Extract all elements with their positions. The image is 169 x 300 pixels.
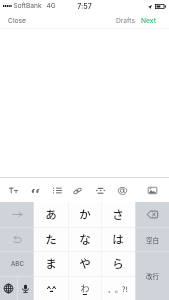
staticText: な bbox=[79, 231, 91, 248]
button[interactable]: ら bbox=[101, 251, 135, 276]
staticText: Next bbox=[141, 17, 156, 25]
button[interactable]: あ bbox=[34, 202, 68, 227]
staticText: SoftBank bbox=[13, 2, 42, 10]
staticText: ま bbox=[45, 255, 57, 272]
staticText: た bbox=[45, 231, 57, 248]
staticText: あ bbox=[45, 206, 57, 223]
button[interactable]: Mention bbox=[113, 180, 131, 201]
staticText: か bbox=[79, 206, 91, 223]
button[interactable]: Text format bbox=[4, 180, 22, 201]
button[interactable]: Drafts bbox=[112, 13, 138, 29]
button[interactable]: や bbox=[68, 251, 102, 276]
staticText: 改行 bbox=[146, 271, 159, 280]
button[interactable]: Delete bbox=[135, 202, 169, 227]
button[interactable]: た bbox=[34, 227, 68, 252]
button[interactable]: Quote bbox=[26, 180, 44, 201]
staticText: Drafts bbox=[116, 17, 135, 25]
button[interactable]: Bullet list bbox=[48, 180, 66, 201]
staticText: さ bbox=[112, 206, 124, 223]
staticText: ら bbox=[112, 255, 124, 272]
button[interactable]: Insert image bbox=[143, 180, 161, 201]
staticText: ABC bbox=[11, 260, 24, 268]
staticText: や bbox=[79, 255, 91, 272]
staticText: 4G bbox=[46, 2, 56, 10]
button[interactable]: さ bbox=[101, 202, 135, 227]
button[interactable]: わ bbox=[68, 276, 102, 300]
staticText: 7:57 bbox=[77, 2, 92, 10]
button[interactable]: Dictation bbox=[17, 276, 34, 300]
button[interactable]: Next bbox=[138, 13, 169, 29]
staticText: 、。?! bbox=[108, 284, 128, 294]
button[interactable]: ま bbox=[34, 251, 68, 276]
button[interactable]: な bbox=[68, 227, 102, 252]
button[interactable]: Insert link bbox=[68, 180, 86, 201]
button[interactable]: 、。?! bbox=[101, 276, 135, 300]
button[interactable]: は bbox=[101, 227, 135, 252]
staticText: は bbox=[112, 231, 124, 248]
button[interactable]: Emoticons bbox=[34, 276, 68, 300]
staticText: 空白 bbox=[146, 235, 159, 244]
button[interactable]: 改行 bbox=[135, 251, 169, 300]
button[interactable]: Switch keyboard bbox=[0, 276, 17, 300]
button[interactable]: Undo bbox=[0, 227, 34, 252]
button[interactable]: ABC bbox=[0, 251, 34, 276]
button[interactable]: Horizontal rule bbox=[91, 180, 109, 201]
button[interactable]: Move cursor right bbox=[0, 202, 34, 227]
button[interactable]: 空白 bbox=[135, 227, 169, 252]
button[interactable]: か bbox=[68, 202, 102, 227]
staticText: わ bbox=[80, 282, 90, 295]
staticText: Close bbox=[8, 17, 26, 25]
button[interactable]: Close bbox=[0, 13, 34, 29]
